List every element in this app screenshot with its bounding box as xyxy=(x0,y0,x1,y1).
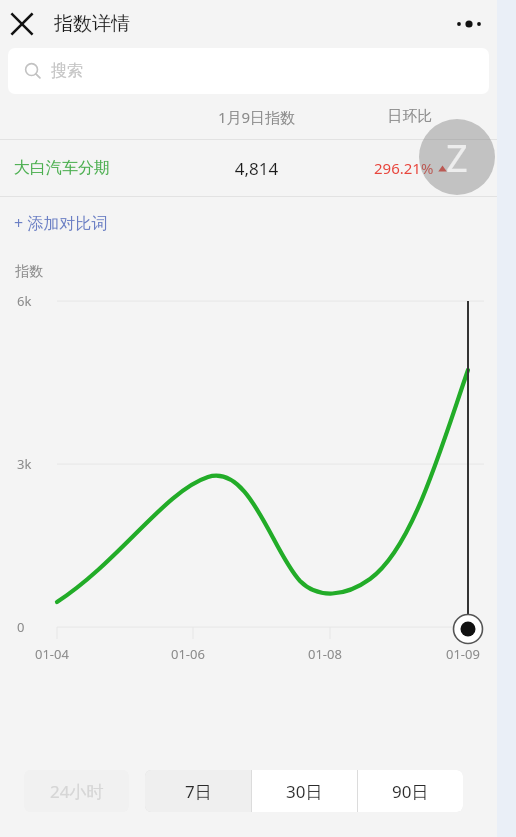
staticText: 90日 xyxy=(392,780,429,803)
button[interactable]: More options xyxy=(449,4,489,44)
button[interactable]: 90日 xyxy=(358,770,463,812)
staticText: + 添加对比词 xyxy=(14,212,108,234)
staticText: 01-04 xyxy=(35,645,69,663)
button[interactable]: 24小时 xyxy=(24,770,129,812)
staticText: 24小时 xyxy=(50,780,104,803)
staticText: 01-08 xyxy=(308,645,342,663)
staticText: 01-06 xyxy=(171,645,205,663)
button[interactable]: 30日 xyxy=(252,770,357,812)
staticText: 大白汽车分期 xyxy=(14,158,176,178)
button[interactable]: 7日 xyxy=(145,770,251,812)
staticText: 日环比 xyxy=(337,107,483,126)
staticText: 指数详情 xyxy=(54,12,130,36)
button[interactable]: Z badge xyxy=(419,119,495,195)
staticText: 7日 xyxy=(185,780,212,803)
staticText: 6k xyxy=(17,292,32,310)
staticText: 4,814 xyxy=(176,157,337,180)
staticText: Z xyxy=(446,131,468,183)
staticText: 搜索 xyxy=(51,61,83,81)
staticText: 1月9日指数 xyxy=(176,107,337,127)
staticText: 指数 xyxy=(15,263,43,281)
staticText: 30日 xyxy=(286,780,323,803)
button[interactable]: 大白汽车分期 xyxy=(0,140,497,196)
staticText: 296.21% xyxy=(374,158,434,178)
button[interactable]: 搜索 xyxy=(8,48,489,94)
button[interactable]: + 添加对比词 xyxy=(0,197,497,249)
button[interactable]: Close xyxy=(4,6,40,42)
staticText: 3k xyxy=(17,455,32,473)
staticText: 01-09 xyxy=(446,645,480,663)
staticText: 0 xyxy=(17,618,25,636)
